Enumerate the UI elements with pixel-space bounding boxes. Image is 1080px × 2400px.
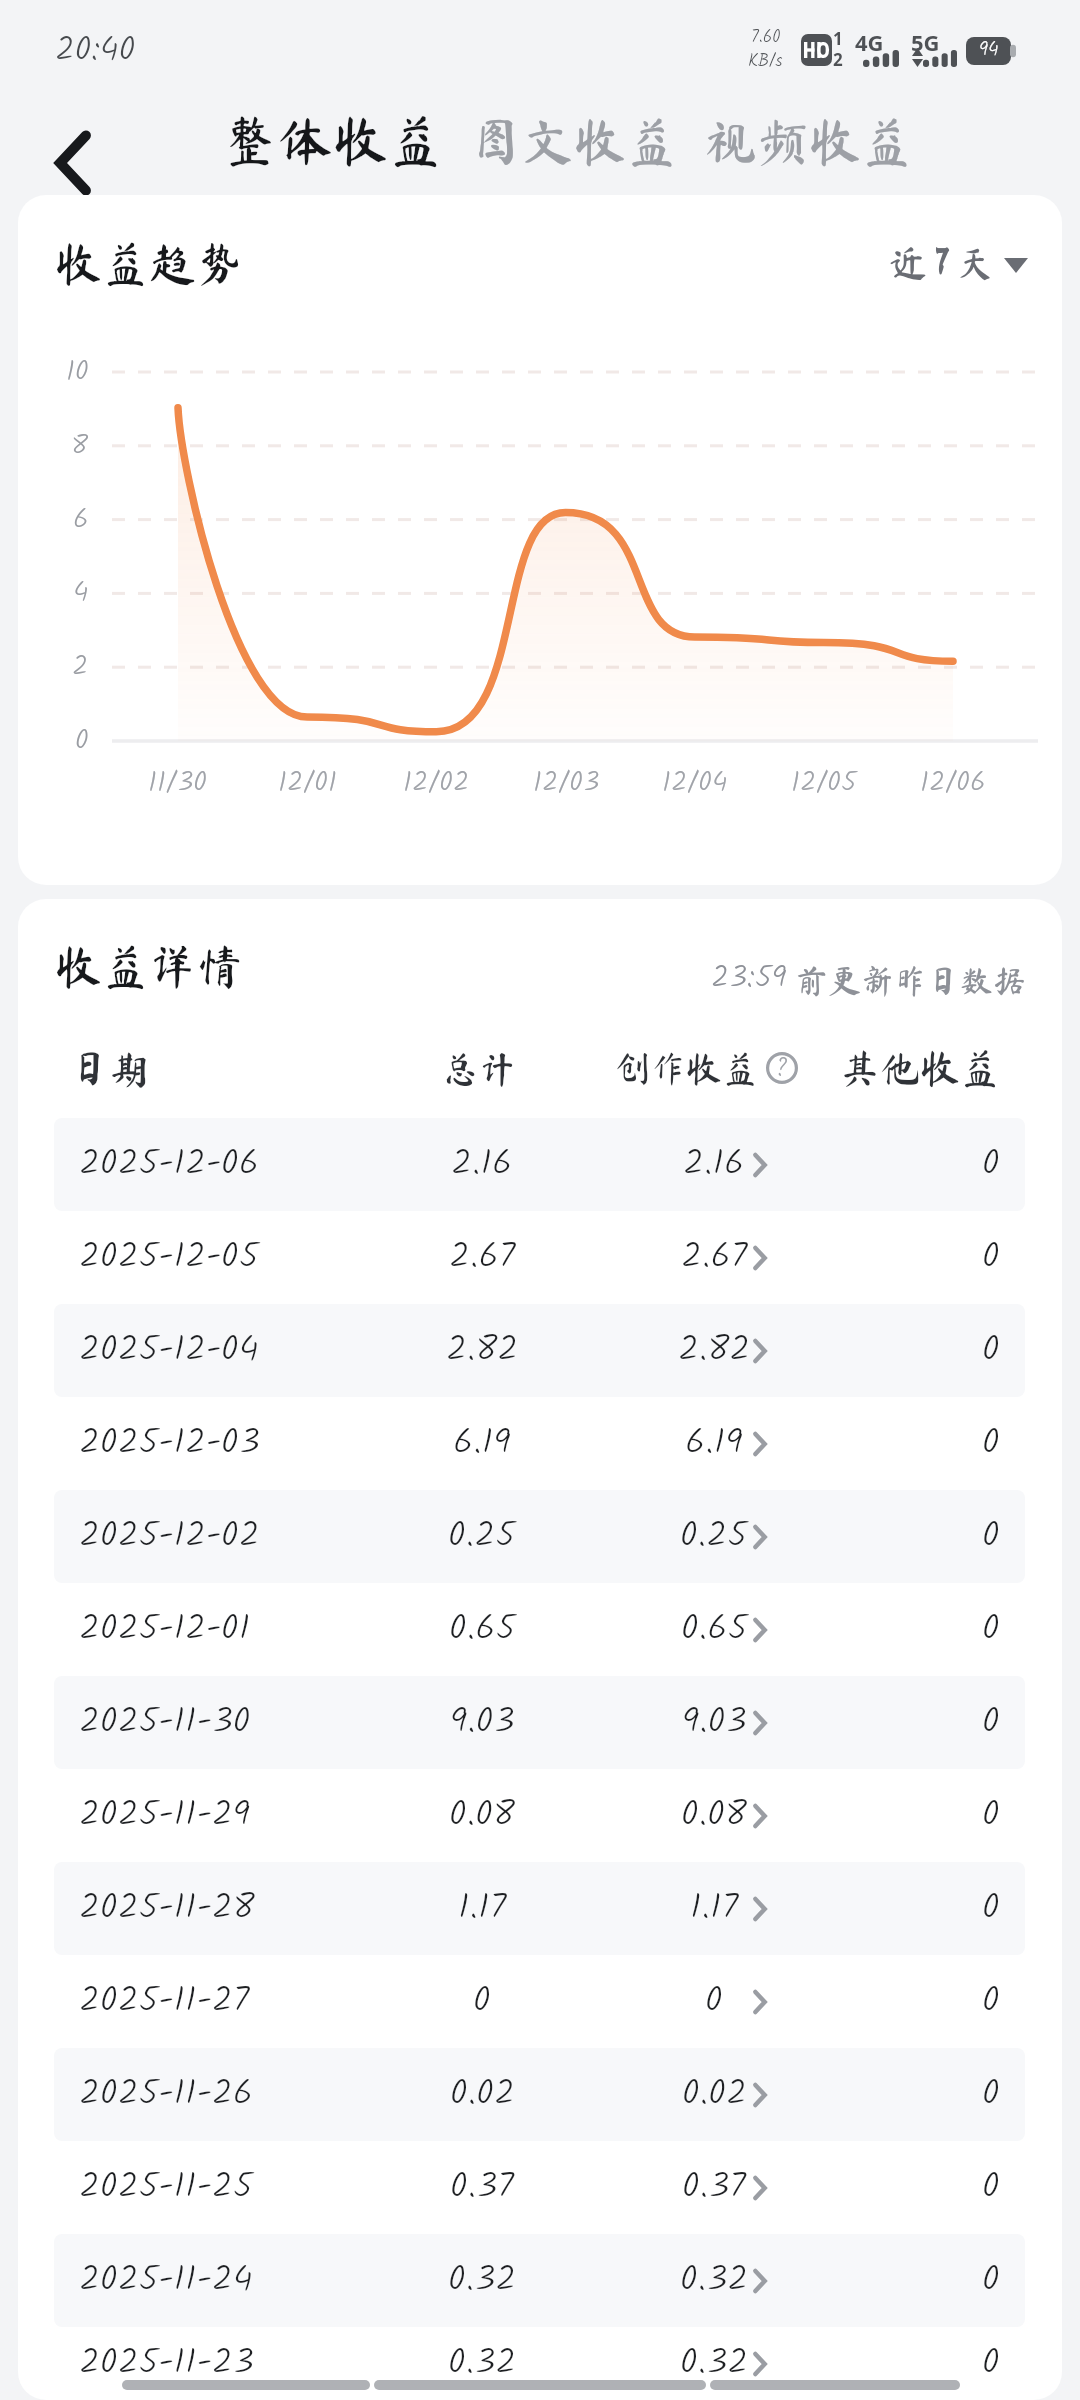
staticText: 0 bbox=[705, 1973, 723, 2030]
staticText: 0 bbox=[982, 2335, 1000, 2392]
staticText: 8 bbox=[71, 424, 89, 468]
staticText: 0 bbox=[982, 1415, 1000, 1472]
button[interactable]: Help bbox=[765, 1051, 799, 1085]
staticText: 0.02 bbox=[682, 2066, 747, 2123]
staticText: 日期 bbox=[70, 1048, 150, 1088]
staticText: 0.65 bbox=[449, 1601, 516, 1658]
staticText: 0 bbox=[982, 1787, 1000, 1844]
staticText: 2025-12-04 bbox=[79, 1322, 259, 1379]
staticText: 2025-11-26 bbox=[79, 2066, 253, 2123]
button[interactable]: 2025-12-06 bbox=[54, 1118, 1025, 1211]
staticText: 12/03 bbox=[533, 761, 600, 806]
staticText: 总计 bbox=[442, 1050, 516, 1087]
staticText: 5G bbox=[911, 27, 940, 57]
staticText: 12/01 bbox=[278, 761, 337, 806]
staticText: 4G bbox=[855, 27, 884, 57]
staticText: 7.60 bbox=[751, 24, 781, 51]
staticText: 6 bbox=[73, 498, 89, 542]
staticText: 9.03 bbox=[450, 1694, 515, 1751]
staticText: 0 bbox=[75, 719, 89, 763]
button[interactable]: 2025-11-25 bbox=[54, 2141, 1025, 2234]
staticText: 其他收益 bbox=[840, 1048, 1000, 1088]
staticText: 12/02 bbox=[403, 761, 470, 806]
staticText: 20:40 bbox=[55, 24, 136, 78]
staticText: 0 bbox=[982, 2066, 1000, 2123]
staticText: 0 bbox=[982, 2159, 1000, 2216]
staticText: 1.17 bbox=[690, 1880, 739, 1937]
button[interactable]: 2025-12-05 bbox=[54, 1211, 1025, 1304]
button[interactable]: 2025-11-28 bbox=[54, 1862, 1025, 1955]
button[interactable]: Back bbox=[23, 113, 123, 213]
staticText: 2.82 bbox=[678, 1322, 751, 1379]
staticText: 23:59 bbox=[711, 954, 787, 1003]
staticText: 0 bbox=[982, 1229, 1000, 1286]
staticText: 2025-11-29 bbox=[79, 1787, 250, 1844]
button[interactable]: 近 7 天 bbox=[881, 236, 1036, 290]
staticText: 图文收益 bbox=[470, 115, 679, 167]
staticText: 2.67 bbox=[449, 1229, 516, 1286]
staticText: 0.65 bbox=[681, 1601, 748, 1658]
staticText: 收益趋势 bbox=[55, 240, 243, 287]
staticText: 0.25 bbox=[448, 1508, 516, 1565]
staticText: 9.03 bbox=[682, 1694, 747, 1751]
staticText: 2025-12-05 bbox=[79, 1229, 259, 1286]
staticText: 2025-11-24 bbox=[79, 2252, 253, 2309]
staticText: 视频收益 bbox=[705, 115, 914, 167]
staticText: 2025-11-30 bbox=[79, 1694, 251, 1751]
staticText: 2 bbox=[833, 48, 843, 71]
staticText: 0.37 bbox=[450, 2159, 514, 2216]
staticText: 1.17 bbox=[458, 1880, 507, 1937]
button[interactable]: 2025-12-01 bbox=[54, 1583, 1025, 1676]
staticText: 2 bbox=[72, 645, 89, 689]
staticText: 11/30 bbox=[148, 761, 208, 806]
staticText: 0.32 bbox=[448, 2252, 517, 2309]
staticText: 6.19 bbox=[453, 1415, 511, 1472]
staticText: 近 7 天 bbox=[889, 244, 994, 282]
button[interactable]: 2025-11-26 bbox=[54, 2048, 1025, 2141]
staticText: 0.32 bbox=[448, 2335, 517, 2392]
staticText: 6.19 bbox=[685, 1415, 743, 1472]
staticText: 2025-12-01 bbox=[79, 1601, 251, 1658]
staticText: ? bbox=[776, 1050, 788, 1084]
button[interactable]: 2025-11-24 bbox=[54, 2234, 1025, 2327]
staticText: 4 bbox=[73, 571, 89, 615]
staticText: 2025-11-25 bbox=[79, 2159, 253, 2216]
staticText: 2.16 bbox=[683, 1136, 745, 1193]
staticText: 2025-11-23 bbox=[79, 2335, 254, 2392]
staticText: 0 bbox=[982, 1694, 1000, 1751]
staticText: 2025-11-28 bbox=[79, 1880, 255, 1937]
button[interactable]: 图文收益 bbox=[462, 103, 687, 179]
staticText: 0 bbox=[982, 1136, 1000, 1193]
staticText: 0 bbox=[982, 1322, 1000, 1379]
staticText: 2.67 bbox=[681, 1229, 748, 1286]
button[interactable]: 2025-11-29 bbox=[54, 1769, 1025, 1862]
button[interactable]: 2025-12-04 bbox=[54, 1304, 1025, 1397]
staticText: 2025-11-27 bbox=[79, 1973, 250, 2030]
staticText: 整体收益 bbox=[223, 113, 444, 168]
staticText: 12/06 bbox=[920, 761, 986, 806]
staticText: 0.08 bbox=[449, 1787, 515, 1844]
staticText: 94 bbox=[979, 35, 999, 65]
staticText: 1 bbox=[833, 27, 843, 50]
button[interactable]: 2025-12-03 bbox=[54, 1397, 1025, 1490]
staticText: 0.32 bbox=[680, 2252, 749, 2309]
staticText: 2.16 bbox=[451, 1136, 513, 1193]
staticText: 0.02 bbox=[450, 2066, 515, 2123]
staticText: 0.25 bbox=[680, 1508, 748, 1565]
button[interactable]: 整体收益 bbox=[215, 101, 452, 180]
staticText: 0.08 bbox=[681, 1787, 747, 1844]
staticText: 12/05 bbox=[791, 761, 857, 806]
staticText: KB/s bbox=[748, 48, 783, 75]
button[interactable]: 2025-11-30 bbox=[54, 1676, 1025, 1769]
staticText: 0 bbox=[982, 1973, 1000, 2030]
staticText: 0.32 bbox=[680, 2335, 749, 2392]
button[interactable]: 2025-12-02 bbox=[54, 1490, 1025, 1583]
staticText: 2025-12-06 bbox=[79, 1136, 260, 1193]
staticText: 0 bbox=[982, 1508, 1000, 1565]
staticText: 创作收益 bbox=[614, 1050, 759, 1086]
button[interactable]: 2025-11-23 bbox=[54, 2327, 1025, 2400]
staticText: 0 bbox=[982, 2252, 1000, 2309]
button[interactable]: 2025-11-27 bbox=[54, 1955, 1025, 2048]
button[interactable]: 视频收益 bbox=[697, 103, 922, 179]
staticText: 2.82 bbox=[446, 1322, 519, 1379]
